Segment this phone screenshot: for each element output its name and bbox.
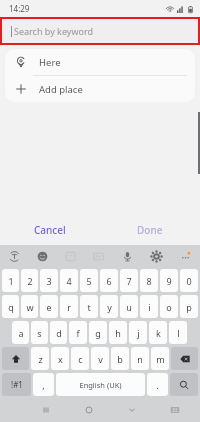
staticText: z [38, 353, 43, 365]
staticText: Done [137, 223, 163, 237]
button[interactable]: x [51, 347, 69, 370]
button[interactable]: Search by keyword [2, 19, 198, 43]
button[interactable]: 5 [80, 269, 98, 292]
button[interactable]: b [111, 347, 129, 370]
staticText: n [137, 353, 143, 365]
staticText: s [37, 327, 42, 339]
button[interactable]: i [140, 295, 158, 318]
button[interactable]: c [71, 347, 89, 370]
staticText: k [156, 327, 161, 339]
button[interactable]: 4 [60, 269, 78, 292]
button[interactable]: t [80, 295, 98, 318]
button[interactable]: 1 [2, 269, 19, 292]
staticText: w [26, 301, 34, 313]
button[interactable]: Shift [2, 347, 29, 370]
button[interactable]: More options [171, 245, 200, 267]
staticText: 3 [46, 275, 52, 287]
button[interactable]: w [21, 295, 38, 318]
staticText: h [115, 327, 121, 339]
button[interactable]: . [147, 373, 168, 396]
staticText: u [126, 301, 132, 313]
staticText: j [137, 327, 140, 339]
staticText: Here [39, 56, 61, 69]
button[interactable]: z [31, 347, 49, 370]
button[interactable]: y [100, 295, 118, 318]
staticText: d [56, 327, 62, 339]
staticText: v [98, 353, 103, 365]
staticText: e [46, 301, 52, 313]
staticText: 9 [166, 275, 172, 287]
staticText: c [78, 353, 83, 365]
button[interactable]: f [69, 321, 87, 344]
button[interactable]: 9 [160, 269, 178, 292]
button[interactable]: d [50, 321, 67, 344]
staticText: g [95, 327, 101, 339]
button[interactable]: 8 [140, 269, 158, 292]
button[interactable]: , [33, 373, 54, 396]
button[interactable]: Change keyboard [153, 398, 196, 422]
button[interactable]: 6 [100, 269, 118, 292]
staticText: m [156, 353, 165, 365]
staticText: Search by keyword [14, 25, 93, 37]
button[interactable]: GIF [84, 245, 113, 267]
staticText: l [177, 327, 180, 339]
staticText: r [67, 301, 71, 313]
button[interactable]: n [131, 347, 149, 370]
button[interactable]: h [109, 321, 127, 344]
button[interactable]: j [129, 321, 147, 344]
staticText: 14:29 [9, 3, 30, 14]
button[interactable]: s [31, 321, 48, 344]
button[interactable]: a [12, 321, 29, 344]
button[interactable]: l [169, 321, 187, 344]
button[interactable]: p [180, 295, 198, 318]
staticText: i [148, 301, 151, 313]
staticText: !#1 [11, 379, 23, 390]
button[interactable]: !#1 [2, 373, 31, 396]
staticText: y [107, 301, 112, 313]
button[interactable]: Stickers [56, 245, 84, 267]
staticText: f [76, 327, 80, 339]
staticText: 0 [186, 275, 192, 287]
button[interactable]: v [91, 347, 109, 370]
staticText: Add place [39, 83, 83, 96]
button[interactable]: 0 [180, 269, 198, 292]
button[interactable]: o [160, 295, 178, 318]
staticText: q [8, 301, 14, 313]
button[interactable]: Keyboard settings [142, 245, 171, 267]
button[interactable]: Voice input [113, 245, 142, 267]
button[interactable]: Home [67, 398, 110, 422]
staticText: English (UK) [79, 380, 122, 390]
staticText: 5 [86, 275, 92, 287]
button[interactable]: k [149, 321, 167, 344]
button[interactable]: 3 [40, 269, 58, 292]
button[interactable]: Done [100, 215, 200, 245]
button[interactable]: 2 [21, 269, 38, 292]
button[interactable]: Here [5, 49, 195, 75]
staticText: 6 [106, 275, 112, 287]
button[interactable]: q [2, 295, 19, 318]
staticText: Cancel [34, 223, 66, 237]
button[interactable]: Cancel [0, 215, 100, 245]
button[interactable]: Hide keyboard [110, 398, 153, 422]
staticText: 2 [27, 275, 33, 287]
staticText: b [117, 353, 123, 365]
button[interactable]: Emoji [28, 245, 56, 267]
staticText: , [42, 379, 45, 391]
staticText: 8 [146, 275, 152, 287]
button[interactable]: r [60, 295, 78, 318]
button[interactable]: e [40, 295, 58, 318]
button[interactable]: 7 [120, 269, 138, 292]
button[interactable]: Text formatting [0, 245, 28, 267]
button[interactable]: g [89, 321, 107, 344]
staticText: t [87, 301, 91, 313]
button[interactable]: Add place [5, 76, 195, 102]
staticText: 1 [8, 275, 14, 287]
staticText: . [156, 379, 159, 391]
button[interactable]: Backspace [171, 347, 198, 370]
button[interactable]: m [151, 347, 169, 370]
button[interactable]: Recent apps [25, 398, 67, 422]
button[interactable]: u [120, 295, 138, 318]
button[interactable]: English (UK) [56, 373, 145, 396]
button[interactable]: Search [170, 373, 198, 396]
staticText: a [18, 327, 24, 339]
